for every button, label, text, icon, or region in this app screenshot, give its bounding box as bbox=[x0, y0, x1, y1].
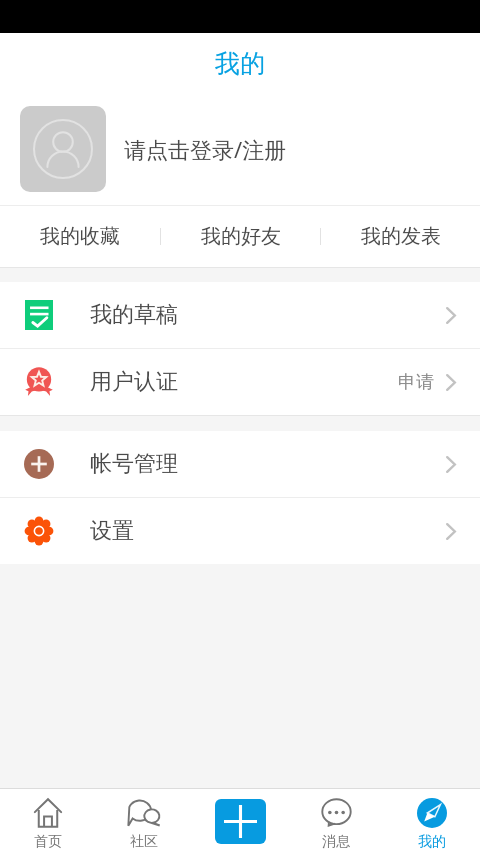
staticText: 消息 bbox=[322, 833, 350, 851]
button[interactable]: 我的好友 bbox=[161, 206, 320, 267]
button[interactable]: 社区 bbox=[96, 789, 192, 853]
staticText: 我的好友 bbox=[201, 224, 281, 249]
staticText: 我的 bbox=[215, 48, 265, 79]
staticText: 请点击登录/注册 bbox=[124, 134, 287, 164]
staticText: 用户认证 bbox=[90, 368, 178, 396]
button[interactable]: 首页 bbox=[0, 789, 96, 853]
staticText: 首页 bbox=[34, 833, 62, 851]
staticText: 申请 bbox=[398, 371, 434, 394]
button[interactable]: 我的 bbox=[384, 789, 480, 853]
button[interactable]: 消息 bbox=[288, 789, 384, 853]
button[interactable]: 帐号管理 bbox=[0, 431, 480, 497]
button[interactable]: 请点击登录/注册 bbox=[0, 93, 480, 205]
staticText: 我的 bbox=[418, 833, 446, 851]
button[interactable]: 我的收藏 bbox=[0, 206, 160, 267]
staticText: 我的收藏 bbox=[40, 224, 120, 249]
button[interactable]: 我的发表 bbox=[321, 206, 480, 267]
staticText: 我的草稿 bbox=[90, 301, 178, 329]
button[interactable]: 设置 bbox=[0, 498, 480, 564]
staticText: 我的发表 bbox=[361, 224, 441, 249]
button[interactable]: 用户认证 bbox=[0, 349, 480, 415]
button[interactable]: 发布 bbox=[215, 799, 266, 844]
staticText: 社区 bbox=[130, 833, 158, 851]
staticText: 帐号管理 bbox=[90, 450, 178, 478]
staticText: 设置 bbox=[90, 517, 134, 545]
button[interactable]: 我的草稿 bbox=[0, 282, 480, 348]
